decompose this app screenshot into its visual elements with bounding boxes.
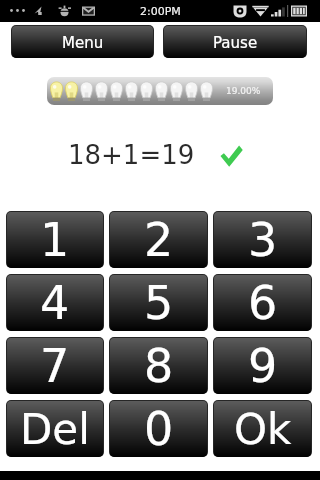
button[interactable]: 4 <box>7 275 103 331</box>
button[interactable]: 1 <box>7 212 103 268</box>
staticText: 8 <box>144 339 174 393</box>
staticText: 2:00PM <box>140 5 181 18</box>
staticText: Menu <box>62 34 104 51</box>
button[interactable]: Ok <box>214 401 311 457</box>
staticText: 1 <box>40 213 70 267</box>
staticText: 19.00% <box>226 86 261 96</box>
staticText: 18+1=19 <box>68 140 195 170</box>
staticText: 3 <box>248 213 278 267</box>
staticText: Del <box>20 405 90 454</box>
staticText: 0 <box>144 402 174 456</box>
button[interactable]: 8 <box>110 338 207 394</box>
button[interactable]: 2 <box>110 212 207 268</box>
staticText: 9 <box>248 339 278 393</box>
button[interactable]: 0 <box>110 401 207 457</box>
staticText: 6 <box>248 276 278 330</box>
button[interactable]: Menu <box>12 26 153 58</box>
staticText: Ok <box>234 405 292 454</box>
staticText: 4 <box>40 276 70 330</box>
button[interactable]: 6 <box>214 275 311 331</box>
button[interactable]: Del <box>7 401 103 457</box>
staticText: Pause <box>213 34 258 51</box>
button[interactable]: 5 <box>110 275 207 331</box>
staticText: 2 <box>144 213 174 267</box>
button[interactable]: 9 <box>214 338 311 394</box>
button[interactable]: Pause <box>164 26 306 58</box>
button[interactable]: 3 <box>214 212 311 268</box>
staticText: 7 <box>40 339 70 393</box>
button[interactable]: 7 <box>7 338 103 394</box>
staticText: 5 <box>144 276 174 330</box>
